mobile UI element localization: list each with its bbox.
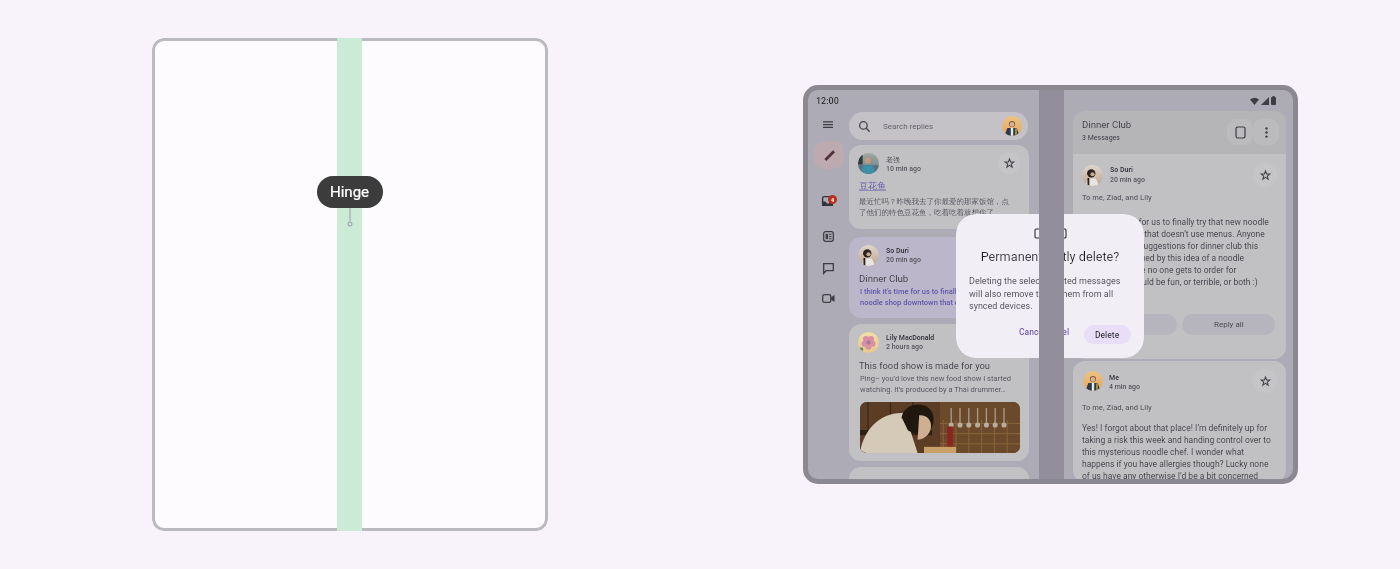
staticText: Reply all — [1214, 320, 1244, 329]
staticText: I think it’s time for us to finally try … — [1082, 217, 1271, 287]
button[interactable]: Delete — [1084, 325, 1131, 344]
staticText: I think it’s time for us to finally try … — [860, 287, 1012, 307]
staticText: 10 min ago — [886, 165, 921, 173]
button[interactable]: Star — [1253, 163, 1277, 187]
staticText: Dinner Club — [1082, 119, 1132, 130]
button[interactable]: Cancel — [1010, 322, 1039, 342]
staticText: 2 hours ago — [886, 343, 924, 351]
staticText: Reply — [1121, 320, 1141, 329]
staticText: 20 min ago — [1110, 176, 1145, 184]
staticText: 20 min ago — [886, 256, 921, 264]
staticText: 豆花鱼 — [859, 180, 886, 191]
button[interactable]: Search replies — [849, 112, 1028, 140]
staticText: 4 min ago — [1109, 383, 1140, 391]
staticText: Delete — [1095, 330, 1120, 340]
staticText: Cancel — [1063, 327, 1070, 337]
staticText: Lily MacDonald — [886, 334, 935, 342]
button[interactable]: Me — [1073, 361, 1286, 479]
button[interactable]: Reply — [1084, 314, 1177, 335]
staticText: 老强 — [886, 155, 900, 164]
staticText: Dinner Club — [859, 273, 909, 284]
button[interactable]: More options — [1253, 119, 1279, 145]
staticText: Hinge — [330, 183, 370, 201]
button[interactable]: Menu — [819, 116, 837, 134]
button[interactable]: Reply all — [1182, 314, 1275, 335]
staticText: So Duri — [886, 247, 909, 255]
staticText: Ping– you’d love this new food show I st… — [860, 374, 1018, 394]
staticText: Yes! I forgot about that place! I’m defi… — [1082, 423, 1271, 479]
staticText: 最近忙吗？昨晚我去了你最爱的那家饭馆，点了他们的特色豆花鱼，吃着吃着就想你了 — [859, 197, 1016, 217]
staticText: So Duri — [1110, 166, 1133, 174]
staticText: Permanently delete? — [1063, 249, 1144, 264]
staticText: To me, Ziad, and Lily — [1082, 403, 1152, 412]
staticText: Deleting the selected messages will also… — [1063, 276, 1123, 311]
button[interactable]: Inbox, 4 unread — [819, 192, 837, 210]
button[interactable]: Compose — [814, 141, 844, 169]
button[interactable]: Star — [1253, 369, 1277, 393]
staticText: 4 — [831, 197, 835, 203]
button[interactable]: So Duri — [849, 237, 1029, 318]
staticText: 3 Messages — [1082, 134, 1120, 142]
button[interactable]: Star — [998, 152, 1020, 174]
button[interactable]: Hinge — [317, 176, 383, 208]
staticText: Permanently delete? — [956, 249, 1039, 264]
button[interactable]: Articles — [819, 227, 837, 245]
button[interactable] — [849, 467, 1029, 479]
staticText: This food show is made for you — [859, 360, 991, 371]
staticText: 12:00 — [816, 96, 839, 107]
staticText: Me — [1109, 374, 1119, 382]
button[interactable]: Video call — [819, 289, 837, 307]
staticText: Deleting the selected messages will also… — [969, 276, 1039, 311]
button[interactable]: Chat — [819, 259, 837, 277]
staticText: Cancel — [1019, 327, 1039, 337]
button[interactable]: Lily MacDonald — [849, 324, 1029, 461]
staticText: To me, Ziad, and Lily — [1082, 193, 1152, 202]
button[interactable]: Cancel — [1063, 322, 1079, 342]
button[interactable]: 老强 — [849, 145, 1029, 229]
staticText: Search replies — [883, 122, 934, 131]
button[interactable]: Delete — [1227, 119, 1253, 145]
